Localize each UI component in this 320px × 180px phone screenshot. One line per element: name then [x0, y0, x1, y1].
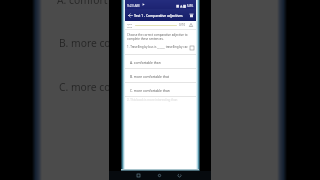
staticText: 0/10 — [179, 23, 186, 27]
staticText: A. comfort — [57, 0, 108, 7]
staticText: B. more co — [59, 36, 111, 50]
staticText: B. more comfortable that — [130, 74, 169, 78]
button[interactable]: A. comfortable than — [125, 55, 196, 68]
staticText: Test 1 - Comparative adjectives -... — [134, 13, 187, 17]
button[interactable]: C. more comfortable than — [125, 83, 196, 96]
button[interactable]: B. more comfortable that — [125, 69, 196, 82]
button[interactable]: Back — [176, 172, 183, 179]
button[interactable]: Settings — [187, 11, 195, 19]
button[interactable]: Flag question — [189, 45, 194, 50]
button[interactable]: Back — [126, 11, 134, 19]
staticText: C. more comfortable than — [130, 88, 170, 92]
staticText: 9:23 AM — [127, 3, 140, 7]
staticText: C. more co — [59, 80, 111, 94]
staticText: 1. Travelling by bus is ______ travellin… — [127, 45, 189, 49]
staticText: time — [127, 25, 133, 28]
staticText: ■ ▲ ▆ 54% — [176, 3, 194, 7]
staticText: Quiz — [127, 22, 133, 25]
staticText: A. comfortable than — [130, 60, 161, 64]
button[interactable]: Home — [156, 172, 163, 179]
button[interactable]: Report — [188, 22, 194, 28]
staticText: Choose the correct comparative adjective… — [127, 33, 194, 41]
button[interactable]: Recents — [135, 172, 142, 179]
staticText: 2. This book is more interesting than — [127, 98, 178, 102]
